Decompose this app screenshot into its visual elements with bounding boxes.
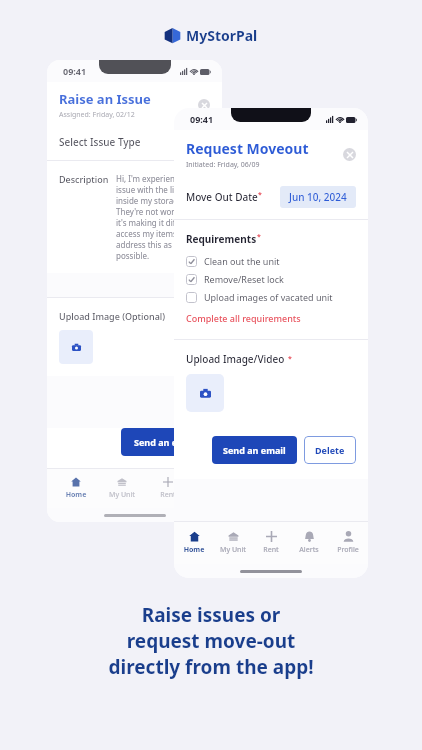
- staticText: *: [257, 232, 261, 242]
- staticText: Assigned: Friday, 02/12: [59, 110, 135, 120]
- staticText: Rent: [151, 490, 185, 500]
- staticText: Delete: [315, 444, 345, 456]
- staticText: *: [288, 354, 292, 364]
- button[interactable]: Remove/Reset lock: [186, 270, 356, 288]
- button[interactable]: Profile: [330, 529, 366, 557]
- staticText: Request Moveout: [186, 139, 309, 158]
- button[interactable]: Upload image: [59, 330, 93, 364]
- staticText: Description: [59, 173, 111, 185]
- staticText: MyStorPal: [186, 26, 258, 45]
- button[interactable]: Home: [59, 475, 93, 502]
- button[interactable]: Alerts: [291, 529, 327, 557]
- button[interactable]: Jun 10, 2024: [280, 186, 356, 208]
- button[interactable]: Upload images of vacated unit: [186, 288, 356, 306]
- staticText: directly from the app!: [0, 654, 422, 680]
- button[interactable]: Clean out the unit: [186, 252, 356, 270]
- button[interactable]: Send an email: [121, 428, 210, 456]
- staticText: Remove/Reset lock: [204, 273, 284, 285]
- staticText: Hi, I'm experiencing an issue with the l…: [116, 173, 210, 261]
- staticText: Move Out Date: [186, 190, 258, 204]
- staticText: 09:41: [190, 113, 214, 125]
- staticText: Upload Image (Optional): [59, 310, 166, 322]
- staticText: Profile: [330, 545, 366, 555]
- staticText: 09:41: [63, 65, 87, 77]
- button[interactable]: My Unit: [215, 529, 251, 557]
- staticText: Initiated: Friday, 06/09: [186, 160, 260, 170]
- staticText: Rent: [253, 545, 289, 555]
- button[interactable]: My Unit: [105, 475, 139, 502]
- staticText: Clean out the unit: [204, 255, 280, 267]
- staticText: My Unit: [105, 490, 139, 500]
- button[interactable]: Home: [176, 529, 212, 557]
- staticText: *: [258, 190, 262, 200]
- staticText: Upload images of vacated unit: [204, 291, 333, 303]
- staticText: Alerts: [291, 545, 327, 555]
- button[interactable]: Upload image or video: [186, 374, 224, 412]
- button[interactable]: Delete: [304, 436, 356, 464]
- staticText: Send an email: [223, 444, 286, 456]
- staticText: Raise issues or: [0, 602, 422, 628]
- staticText: Complete all requirements: [186, 312, 301, 324]
- button[interactable]: Send an email: [212, 436, 297, 464]
- staticText: Upload Image/Video: [186, 352, 285, 366]
- staticText: request move-out: [0, 628, 422, 654]
- staticText: Raise an Issue: [59, 90, 151, 108]
- staticText: Requirements: [186, 232, 257, 246]
- button[interactable]: Rent: [253, 529, 289, 557]
- staticText: My Unit: [215, 545, 251, 555]
- staticText: Select Issue Type: [59, 135, 141, 149]
- button[interactable]: Close: [198, 99, 210, 111]
- button[interactable]: Rent: [151, 475, 185, 502]
- staticText: Jun 10, 2024: [289, 190, 347, 204]
- button[interactable]: Close: [343, 148, 356, 161]
- staticText: Home: [59, 490, 93, 500]
- staticText: Home: [176, 545, 212, 555]
- staticText: Send an email: [134, 436, 197, 448]
